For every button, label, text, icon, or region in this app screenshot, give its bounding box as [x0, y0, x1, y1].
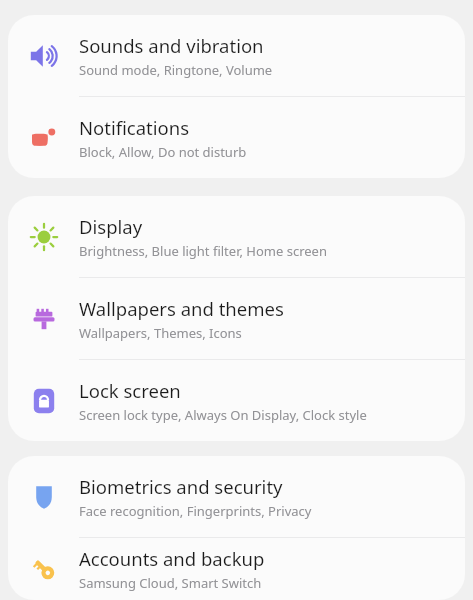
staticText: Sounds and vibration — [79, 33, 264, 58]
button[interactable]: Display — [8, 196, 465, 277]
staticText: Display — [79, 214, 143, 239]
staticText: Face recognition, Fingerprints, Privacy — [79, 502, 312, 520]
staticText: Biometrics and security — [79, 474, 283, 499]
button[interactable]: Lock screen — [8, 360, 465, 441]
button[interactable]: Wallpapers and themes — [8, 278, 465, 359]
staticText: Lock screen — [79, 378, 181, 403]
staticText: Sound mode, Ringtone, Volume — [79, 61, 273, 79]
other: Lock screen — [29, 386, 59, 416]
staticText: Brightness, Blue light filter, Home scre… — [79, 242, 327, 260]
other: Accounts and backup — [29, 554, 59, 584]
other: Wallpapers and themes — [29, 304, 59, 334]
other: Notifications — [29, 123, 59, 153]
staticText: Block, Allow, Do not disturb — [79, 143, 247, 161]
staticText: Wallpapers and themes — [79, 296, 284, 321]
button[interactable]: Sounds and vibration — [8, 15, 465, 96]
button[interactable]: Biometrics and security — [8, 456, 465, 537]
other: Display — [29, 222, 59, 252]
other: Sounds and vibration — [29, 41, 59, 71]
staticText: Samsung Cloud, Smart Switch — [79, 574, 262, 592]
other: Biometrics and security — [29, 482, 59, 512]
staticText: Accounts and backup — [79, 546, 265, 571]
button[interactable]: Notifications — [8, 97, 465, 178]
button[interactable]: Accounts and backup — [8, 538, 465, 600]
staticText: Screen lock type, Always On Display, Clo… — [79, 406, 367, 424]
staticText: Notifications — [79, 115, 190, 140]
staticText: Wallpapers, Themes, Icons — [79, 324, 242, 342]
